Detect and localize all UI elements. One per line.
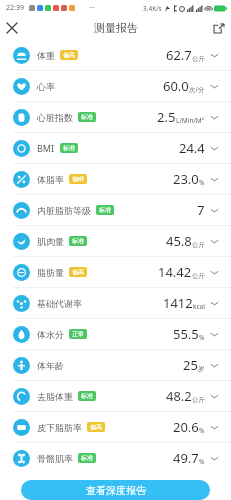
button[interactable]: 体年龄	[0, 350, 231, 381]
staticText: 体脂率	[37, 174, 64, 185]
staticText: 体重	[37, 50, 55, 61]
staticText: 公斤	[192, 396, 205, 404]
staticText: 62.7	[166, 46, 192, 64]
staticText: 偏畔	[72, 175, 84, 183]
staticText: 偏高	[63, 51, 75, 59]
staticText: 肌肉量	[37, 236, 64, 247]
button[interactable]: 去脂体重	[0, 381, 231, 412]
staticText: 标准	[99, 206, 111, 214]
staticText: 23.0	[173, 170, 199, 188]
staticText: 次/分	[189, 85, 205, 94]
staticText: 公斤	[192, 55, 205, 63]
staticText: 偏高	[72, 268, 84, 276]
staticText: 皮下脂肪率	[37, 422, 82, 433]
staticText: 体年龄	[37, 360, 64, 371]
staticText: 去脂体重	[37, 391, 73, 402]
staticText: 22:39	[6, 3, 24, 13]
staticText: 心率	[37, 81, 55, 92]
staticText: 2.5	[157, 108, 176, 126]
staticText: 公斤	[192, 241, 205, 249]
staticText: 标准	[81, 113, 93, 121]
button[interactable]: 心率	[0, 71, 231, 102]
button[interactable]: 基础代谢率	[0, 288, 231, 319]
staticText: 45.8	[166, 232, 192, 250]
button[interactable]: 体水分	[0, 319, 231, 350]
staticText: %	[199, 457, 205, 466]
button[interactable]: Share	[207, 16, 231, 40]
staticText: 标准	[63, 144, 75, 152]
staticText: 公斤	[192, 272, 205, 280]
button[interactable]: 肌肉量	[0, 226, 231, 257]
staticText: 岁	[198, 365, 205, 373]
staticText: 标准	[72, 237, 84, 245]
staticText: 脂肪量	[37, 267, 64, 278]
staticText: 查看深度报告	[86, 484, 146, 497]
staticText: 基础代谢率	[37, 298, 82, 309]
staticText: 25	[183, 356, 198, 374]
button[interactable]: 体脂率	[0, 164, 231, 195]
staticText: 标准	[81, 454, 93, 462]
button[interactable]: 体重	[0, 40, 231, 71]
staticText: 49.7	[173, 449, 199, 467]
staticText: 体水分	[37, 329, 64, 340]
staticText: 24.4	[179, 139, 205, 157]
staticText: %	[199, 426, 205, 435]
staticText: 60.0	[163, 77, 189, 95]
staticText: 正常	[72, 330, 84, 338]
staticText: 20.6	[173, 418, 199, 436]
button[interactable]: 脂肪量	[0, 257, 231, 288]
staticText: 测量报告	[94, 21, 138, 35]
staticText: BMI	[37, 142, 55, 154]
staticText: 3.4K/s	[143, 4, 162, 13]
staticText: 1412	[163, 294, 193, 312]
button[interactable]: BMI	[0, 133, 231, 164]
staticText: 内脏脂肪等级	[37, 205, 91, 216]
staticText: %	[199, 178, 205, 187]
staticText: 14.42	[158, 263, 192, 281]
staticText: 心脏指数	[37, 112, 73, 123]
button[interactable]: 皮下脂肪率	[0, 412, 231, 443]
staticText: L/Min/M²	[176, 116, 205, 125]
staticText: %	[199, 333, 205, 342]
staticText: 标准	[81, 392, 93, 400]
staticText: ···	[89, 3, 95, 13]
staticText: 48.2	[166, 387, 192, 405]
button[interactable]: 内脏脂肪等级	[0, 195, 231, 226]
button[interactable]: Close	[0, 16, 24, 40]
button[interactable]: 查看深度报告	[21, 480, 210, 500]
staticText: 骨骼肌率	[37, 453, 73, 464]
staticText: 7	[197, 201, 205, 219]
staticText: 55.5	[173, 325, 199, 343]
staticText: 偏高	[90, 423, 102, 431]
button[interactable]: 心脏指数	[0, 102, 231, 133]
staticText: kcal	[193, 302, 205, 311]
button[interactable]: 骨骼肌率	[0, 443, 231, 473]
